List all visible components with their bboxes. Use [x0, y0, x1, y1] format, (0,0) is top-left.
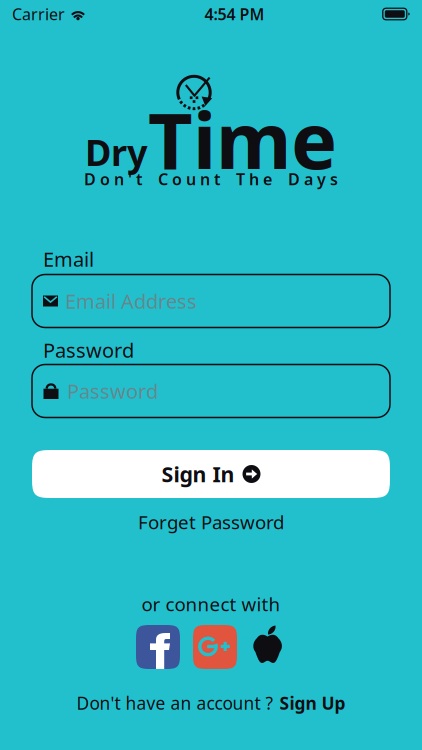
staticText: Dry: [85, 128, 148, 176]
staticText: Email: [43, 246, 94, 272]
button[interactable]: Forget Password: [121, 509, 301, 535]
staticText: D o n ' t C o u n t T h e D a y s: [84, 168, 338, 190]
staticText: Don't have an account ?: [76, 691, 273, 714]
staticText: Email Address: [65, 288, 197, 314]
staticText: Password: [67, 378, 158, 404]
button[interactable]: Sign in with Google: [193, 625, 237, 669]
button[interactable]: Sign in with Facebook: [136, 625, 180, 669]
staticText: Forget Password: [138, 510, 284, 534]
staticText: Sign Up: [279, 691, 345, 714]
button[interactable]: Sign Up: [279, 691, 345, 714]
staticText: Sign In: [161, 460, 234, 488]
staticText: or connect with: [141, 592, 280, 616]
staticText: Carrier: [12, 3, 65, 25]
button[interactable]: Sign in with Apple: [250, 625, 286, 669]
staticText: 4:54 PM: [204, 3, 264, 25]
button[interactable]: Sign In: [32, 450, 390, 498]
staticText: Time: [148, 88, 337, 190]
staticText: Password: [43, 337, 134, 363]
